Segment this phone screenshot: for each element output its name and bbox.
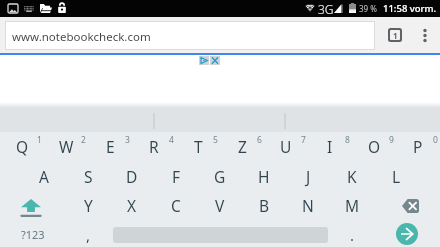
button[interactable]: T (176, 132, 220, 161)
button[interactable]: , (70, 220, 106, 247)
staticText: 4 (169, 134, 174, 146)
button[interactable]: A (22, 162, 66, 191)
button[interactable]: N (286, 191, 330, 220)
staticText: A (39, 166, 49, 187)
staticText: O (368, 136, 381, 157)
button[interactable]: www.notebookcheck.com (6, 22, 374, 49)
staticText: M (345, 195, 360, 216)
staticText: Z (238, 136, 247, 157)
staticText: N (302, 195, 314, 216)
button[interactable]: L (374, 162, 418, 191)
staticText: 1 (37, 134, 42, 146)
button[interactable]: I (308, 132, 352, 161)
staticText: I (327, 136, 333, 157)
staticText: 3G (318, 1, 334, 17)
button[interactable]: W (44, 132, 88, 161)
staticText: . (350, 225, 355, 245)
staticText: , (86, 225, 91, 245)
staticText: 2 (81, 134, 86, 146)
staticText: F (172, 166, 181, 187)
button[interactable]: X (110, 191, 154, 220)
button[interactable]: S (66, 162, 110, 191)
button[interactable]: O (352, 132, 396, 161)
button[interactable]: ?123 (11, 220, 55, 247)
staticText: T (194, 136, 203, 157)
staticText: ?123 (21, 227, 45, 242)
staticText: 0 (433, 134, 438, 146)
staticText: X (127, 195, 137, 216)
button[interactable]: Y (66, 191, 110, 220)
button[interactable]: R (132, 132, 176, 161)
staticText: 3 (125, 134, 130, 146)
button[interactable]: H (242, 162, 286, 191)
staticText: 39 % (359, 3, 377, 14)
staticText: 8 (345, 134, 350, 146)
staticText: R (149, 136, 159, 157)
button[interactable]: More options (412, 22, 438, 48)
staticText: B (259, 195, 270, 216)
button[interactable]: M (330, 191, 374, 220)
button[interactable]: Q (0, 132, 44, 161)
button[interactable]: F (154, 162, 198, 191)
button[interactable]: . (334, 220, 370, 247)
staticText: 7 (301, 134, 306, 146)
button[interactable]: Enter (396, 223, 418, 245)
staticText: P (413, 136, 423, 157)
staticText: V (215, 195, 225, 216)
button[interactable]: B (242, 191, 286, 220)
staticText: U (280, 136, 292, 157)
button[interactable]: V (198, 191, 242, 220)
staticText: J (306, 166, 311, 187)
button[interactable]: J (286, 162, 330, 191)
button[interactable]: G (198, 162, 242, 191)
button[interactable]: Z (220, 132, 264, 161)
button[interactable]: K (330, 162, 374, 191)
staticText: www.notebookcheck.com (12, 29, 151, 45)
button[interactable]: E (88, 132, 132, 161)
button[interactable]: D (110, 162, 154, 191)
button[interactable]: U (264, 132, 308, 161)
staticText: D (126, 166, 138, 187)
button[interactable]: AdChoices (199, 56, 209, 65)
staticText: Y (84, 195, 93, 216)
button[interactable]: P (396, 132, 440, 161)
staticText: L (392, 166, 401, 187)
staticText: 6 (257, 134, 262, 146)
staticText: W (59, 136, 74, 157)
staticText: C (171, 195, 181, 216)
staticText: K (347, 166, 357, 187)
staticText: 11:58 vorm. (383, 2, 437, 15)
staticText: E (106, 136, 115, 157)
button[interactable]: Tabs (382, 22, 408, 48)
button[interactable]: Close ad (210, 56, 220, 65)
button[interactable]: Backspace (388, 191, 432, 220)
staticText: 9 (389, 134, 394, 146)
staticText: Q (16, 136, 29, 157)
staticText: H (258, 166, 270, 187)
staticText: S (84, 166, 93, 187)
staticText: G (214, 166, 226, 187)
button[interactable]: C (154, 191, 198, 220)
staticText: 1 (393, 30, 398, 40)
button[interactable]: Shift (8, 191, 52, 220)
staticText: 5 (213, 134, 218, 146)
